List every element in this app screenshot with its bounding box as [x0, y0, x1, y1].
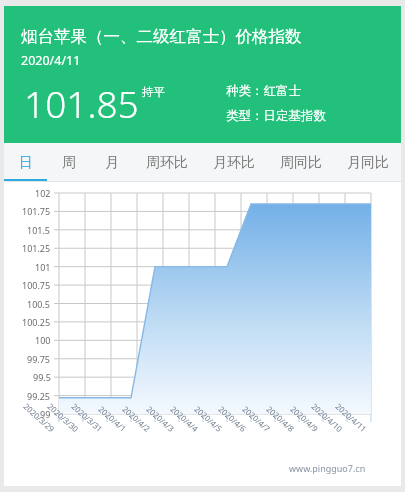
- staticText: 日: [19, 154, 33, 172]
- staticText: 周同比: [280, 154, 322, 172]
- staticText: 类型：日定基指数: [226, 108, 326, 124]
- button[interactable]: 日: [4, 143, 47, 182]
- button[interactable]: 月: [90, 143, 133, 182]
- staticText: 烟台苹果（一、二级红富士）价格指数: [21, 26, 302, 47]
- button[interactable]: 月同比: [334, 143, 401, 182]
- button[interactable]: 月环比: [200, 143, 267, 182]
- staticText: 101.85: [24, 78, 139, 128]
- staticText: 种类：红富士: [226, 83, 301, 99]
- staticText: 2020/4/11: [21, 52, 81, 69]
- button[interactable]: 周: [47, 143, 90, 182]
- button[interactable]: 周同比: [267, 143, 334, 182]
- staticText: 月同比: [347, 154, 389, 172]
- staticText: 周环比: [146, 154, 188, 172]
- staticText: 持平: [142, 85, 165, 99]
- staticText: 周: [62, 154, 76, 172]
- button[interactable]: 周环比: [133, 143, 200, 182]
- staticText: 月环比: [213, 154, 255, 172]
- staticText: 月: [105, 154, 119, 172]
